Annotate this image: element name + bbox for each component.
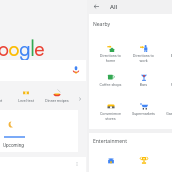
button[interactable]: Voice search	[0, 60, 86, 81]
staticText: Entertainment	[93, 138, 127, 145]
button[interactable]: Back	[93, 3, 100, 10]
staticText: Coffee shops	[95, 83, 126, 87]
staticText: Nearby	[93, 21, 111, 28]
button[interactable]: Bars	[127, 72, 160, 100]
staticText: Directions to work	[128, 54, 159, 63]
button[interactable]: Upcoming	[0, 110, 78, 152]
staticText: Gas stations	[161, 112, 172, 116]
button[interactable]: Directions to work	[127, 43, 160, 71]
button[interactable]	[127, 155, 160, 172]
button[interactable]	[94, 155, 127, 172]
button[interactable]: Convenience stores	[94, 101, 127, 129]
button[interactable]: More options	[75, 162, 79, 166]
button[interactable]: Gas stations	[160, 101, 172, 129]
button[interactable]: Places	[160, 72, 172, 100]
staticText: Dinner recipes	[45, 99, 69, 103]
button[interactable]: Eat out	[160, 43, 172, 71]
staticText: Places	[161, 83, 172, 87]
button[interactable]: Coffee shops	[94, 72, 127, 100]
button[interactable]: Dinner recipes	[41, 88, 72, 96]
staticText: Convenience stores	[95, 112, 126, 121]
button[interactable]: Level test	[11, 88, 41, 94]
staticText: nt	[0, 99, 3, 103]
staticText: Supermarkets	[128, 112, 159, 116]
staticText: Google	[0, 35, 45, 64]
button[interactable]: More shortcuts	[77, 96, 83, 102]
staticText: Upcoming	[3, 143, 24, 148]
staticText: Eat out	[161, 54, 172, 58]
staticText: All	[110, 3, 118, 11]
button[interactable]: Directions to home	[94, 43, 127, 71]
staticText: Directions to home	[95, 54, 126, 63]
staticText: Bars	[128, 83, 159, 87]
other: Voice search	[72, 66, 80, 74]
staticText: Level test	[18, 99, 34, 103]
button[interactable]: Supermarkets	[127, 101, 160, 129]
